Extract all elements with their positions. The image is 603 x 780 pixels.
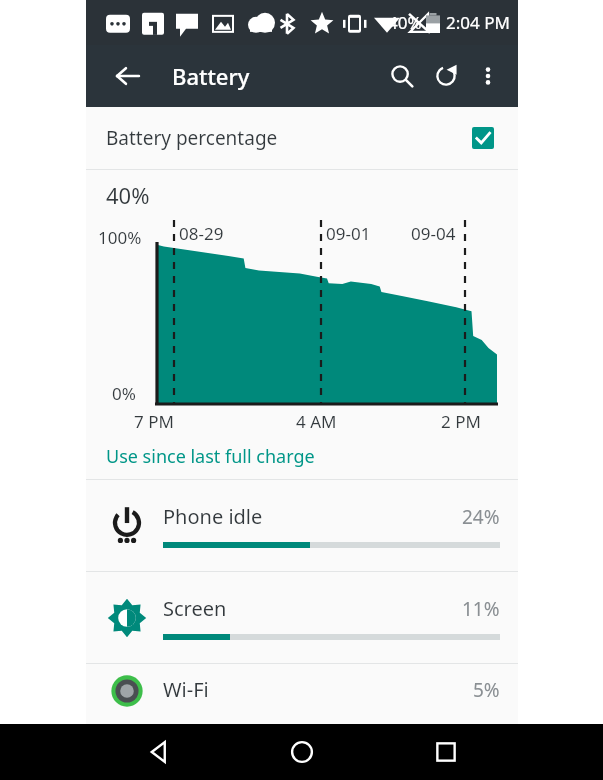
button[interactable]: Recent apps	[374, 724, 518, 780]
staticText: 09-04	[411, 222, 456, 245]
button[interactable]: Wi-Fi	[86, 664, 518, 724]
staticText: 2 PM	[441, 410, 481, 433]
button[interactable]: Back	[108, 56, 148, 96]
button[interactable]: Refresh	[424, 54, 468, 98]
staticText: 09-01	[326, 222, 371, 245]
button[interactable]: Search	[380, 54, 424, 98]
button[interactable]: Phone idle	[86, 480, 518, 571]
staticText: 5%	[473, 677, 500, 703]
staticText: 2:04 PM	[446, 11, 510, 34]
staticText: Wi-Fi	[163, 676, 209, 703]
button[interactable]: More options	[468, 56, 508, 96]
staticText: Battery	[172, 61, 250, 91]
staticText: 100%	[98, 226, 142, 249]
button[interactable]: Home	[230, 724, 374, 780]
staticText: Phone idle	[163, 503, 263, 530]
staticText: 0%	[112, 382, 136, 405]
staticText: 40%	[388, 11, 422, 34]
button[interactable]: Use since last full charge	[86, 433, 518, 479]
staticText: Battery percentage	[106, 125, 278, 151]
staticText: 11%	[462, 596, 500, 622]
staticText: 7 PM	[134, 410, 174, 433]
staticText: Screen	[163, 595, 227, 622]
staticText: 40%	[106, 180, 150, 210]
staticText: 08-29	[179, 222, 224, 245]
staticText: Use since last full charge	[106, 444, 315, 469]
button[interactable]: Back	[86, 724, 230, 780]
button[interactable]: Battery percentage	[86, 107, 518, 169]
button[interactable]: Screen	[86, 572, 518, 663]
staticText: 4 AM	[296, 410, 337, 433]
staticText: 24%	[462, 504, 500, 530]
